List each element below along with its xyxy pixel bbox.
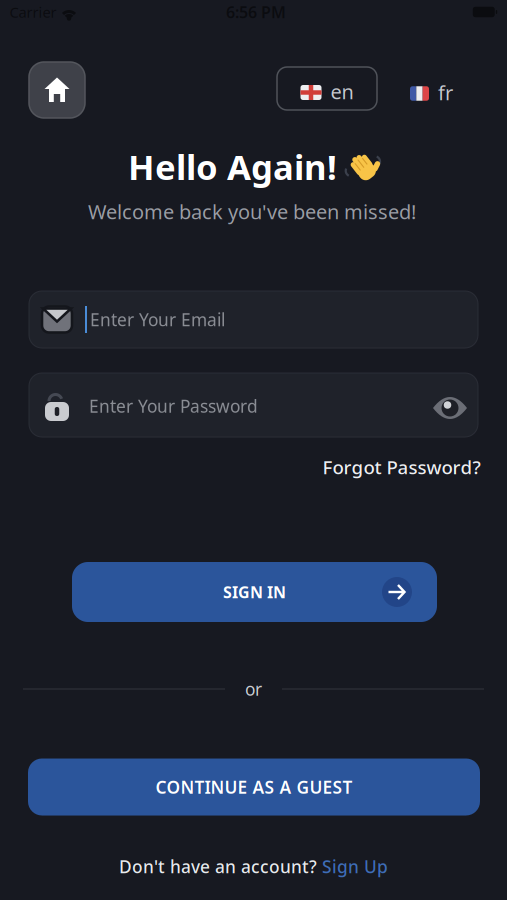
staticText: Carrier (9, 2, 56, 22)
button[interactable]: fr (410, 71, 453, 114)
staticText: Enter Your Email (90, 308, 225, 331)
button[interactable]: SIGN IN (72, 562, 437, 622)
staticText: fr (438, 79, 453, 106)
staticText: Hello Again! (128, 143, 337, 189)
button[interactable] (29, 62, 85, 118)
button[interactable]: CONTINUE AS A GUEST (28, 758, 480, 815)
button[interactable] (428, 386, 472, 430)
staticText: Sign Up (322, 855, 388, 878)
staticText: SIGN IN (223, 581, 286, 603)
button[interactable]: en (277, 67, 377, 110)
button[interactable]: Forgot Password? (322, 455, 480, 479)
staticText: 6:56 PM (226, 1, 286, 23)
button[interactable]: Don't have an account? (119, 855, 388, 878)
staticText: Don't have an account? (119, 855, 317, 878)
staticText: Welcome back you've been missed! (88, 198, 416, 225)
staticText: Enter Your Password (89, 394, 258, 417)
button[interactable]: Enter Your Email (29, 291, 478, 348)
staticText: CONTINUE AS A GUEST (155, 775, 352, 798)
staticText: en (330, 78, 353, 105)
staticText: or (245, 677, 262, 700)
staticText: Forgot Password? (322, 455, 480, 479)
button[interactable]: Enter Your Password (29, 373, 478, 437)
